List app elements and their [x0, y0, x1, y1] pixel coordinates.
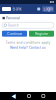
staticText: Continue — [7, 32, 22, 36]
staticText: Terms and conditions apply — [5, 41, 50, 45]
staticText: Login — [44, 7, 53, 11]
staticText: Search — [8, 23, 19, 27]
staticText: Personal — [6, 16, 20, 20]
staticText: ◀ — [11, 93, 16, 99]
staticText: Register — [35, 32, 48, 36]
staticText: Bank — [12, 7, 21, 11]
staticText: Need help? Contact us — [10, 46, 46, 49]
